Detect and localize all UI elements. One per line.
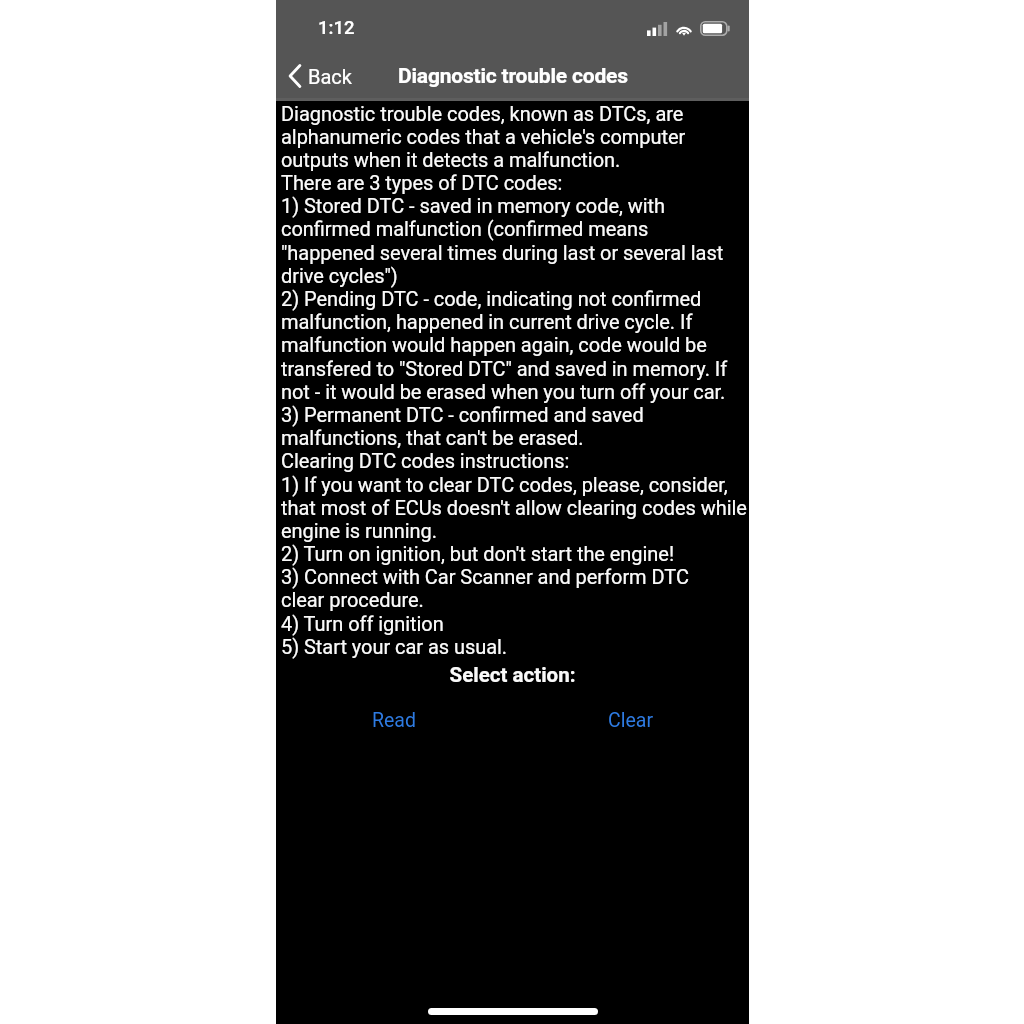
staticText: Select action: — [276, 663, 749, 687]
staticText: 4) Turn off ignition — [281, 612, 444, 635]
staticText: clear procedure. — [281, 588, 424, 611]
staticText: that most of ECUs doesn't allow clearing… — [281, 496, 747, 519]
other: Back — [288, 63, 302, 89]
staticText: There are 3 types of DTC codes: — [281, 171, 563, 194]
staticText: 5) Start your car as usual. — [281, 635, 508, 658]
staticText: not - it would be erased when you turn o… — [281, 380, 726, 403]
staticText: 3) Connect with Car Scanner and perform … — [281, 565, 689, 588]
staticText: Clearing DTC codes instructions: — [281, 449, 570, 472]
staticText: malfunction would happen again, code wou… — [281, 333, 707, 356]
staticText: "happened several times during last or s… — [281, 241, 724, 264]
button[interactable]: Clear — [582, 702, 679, 739]
staticText: alphanumeric codes that a vehicle's comp… — [281, 125, 686, 148]
staticText: 1) Stored DTC - saved in memory code, wi… — [281, 194, 666, 217]
staticText: 1:12 — [318, 17, 355, 39]
staticText: confirmed malfunction (confirmed means — [281, 217, 649, 240]
staticText: 1) If you want to clear DTC codes, pleas… — [281, 473, 728, 496]
staticText: drive cycles") — [281, 264, 398, 287]
staticText: 3) Permanent DTC - confirmed and saved — [281, 403, 644, 426]
staticText: transfered to "Stored DTC" and saved in … — [281, 357, 728, 380]
staticText: Diagnostic trouble codes — [398, 64, 628, 89]
staticText: Clear — [608, 709, 653, 732]
button[interactable]: Back — [276, 57, 362, 101]
staticText: Read — [372, 709, 416, 732]
button[interactable]: Read — [346, 702, 442, 739]
staticText: malfunction, happened in current drive c… — [281, 310, 693, 333]
staticText: Diagnostic trouble codes, known as DTCs,… — [281, 102, 684, 125]
staticText: 2) Pending DTC - code, indicating not co… — [281, 287, 702, 310]
staticText: malfunctions, that can't be erased. — [281, 426, 584, 449]
staticText: outputs when it detects a malfunction. — [281, 148, 621, 171]
staticText: Back — [308, 65, 352, 88]
staticText: 2) Turn on ignition, but don't start the… — [281, 542, 675, 565]
staticText: engine is running. — [281, 519, 437, 542]
